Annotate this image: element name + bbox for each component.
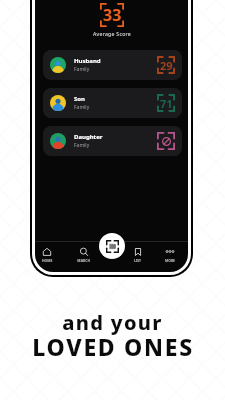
- button[interactable]: SEARCH: [74, 247, 94, 263]
- staticText: Family: [74, 104, 90, 111]
- button[interactable]: Husband: [43, 50, 182, 80]
- staticText: Family: [74, 66, 90, 73]
- staticText: HOME: [42, 258, 53, 263]
- button[interactable]: LIST: [128, 247, 148, 263]
- staticText: Family: [74, 142, 90, 149]
- staticText: 33: [103, 4, 122, 26]
- button[interactable]: Son: [43, 88, 182, 118]
- button[interactable]: HOME: [37, 247, 57, 263]
- staticText: Son: [74, 95, 85, 103]
- staticText: Average Score: [93, 30, 131, 37]
- staticText: Husband: [74, 57, 101, 65]
- staticText: Daughter: [74, 133, 103, 141]
- button[interactable]: Scan: [99, 233, 125, 259]
- staticText: MORE: [165, 258, 176, 263]
- staticText: and your: [62, 309, 163, 336]
- staticText: 71: [160, 96, 173, 111]
- staticText: LIST: [134, 258, 142, 263]
- staticText: SEARCH: [77, 258, 91, 263]
- button[interactable]: Daughter: [43, 126, 182, 156]
- button[interactable]: MORE: [160, 247, 180, 263]
- staticText: LOVED ONES: [32, 331, 194, 362]
- staticText: 29: [160, 58, 173, 73]
